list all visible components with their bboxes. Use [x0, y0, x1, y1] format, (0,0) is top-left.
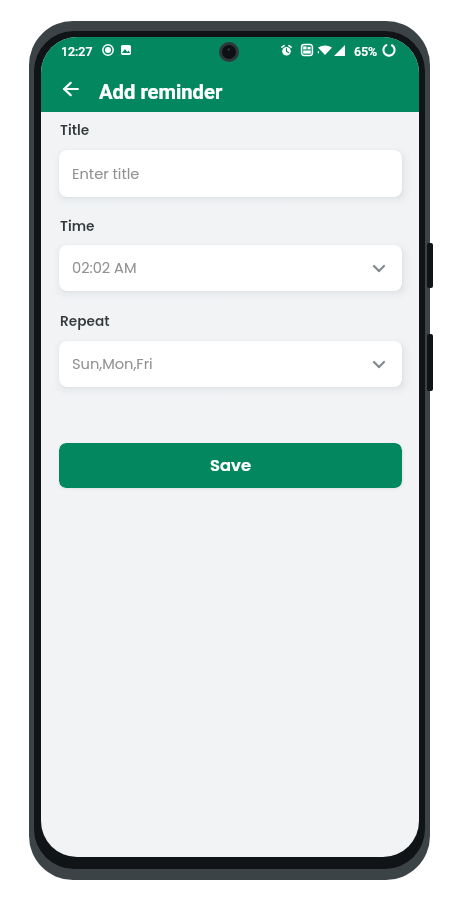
staticText: 65% — [354, 44, 378, 59]
staticText: Sun,Mon,Fri — [72, 354, 153, 374]
button[interactable]: 02:02 AM — [59, 245, 402, 291]
staticText: 12:27 — [61, 44, 93, 59]
button[interactable]: Back — [49, 68, 92, 109]
staticText: Repeat — [60, 312, 110, 331]
button[interactable]: Enter title — [59, 150, 402, 197]
staticText: Title — [60, 121, 90, 140]
button[interactable]: Sun,Mon,Fri — [59, 341, 402, 387]
staticText: Add reminder — [99, 80, 223, 104]
button[interactable]: Save — [59, 443, 402, 488]
staticText: Enter title — [72, 164, 140, 184]
staticText: Save — [210, 454, 252, 477]
staticText: Time — [60, 217, 95, 236]
staticText: 02:02 AM — [72, 258, 137, 278]
